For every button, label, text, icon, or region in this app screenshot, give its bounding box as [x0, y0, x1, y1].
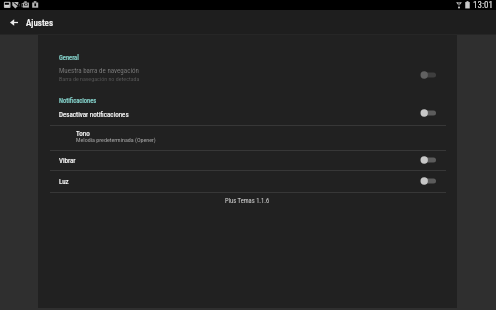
button[interactable]: Toggle [416, 152, 444, 168]
button[interactable]: Toggle [416, 67, 444, 83]
staticText: General [59, 54, 79, 62]
button[interactable]: Muestra barra de navegación [38, 63, 457, 86]
staticText: Melodía predeterminada (Opener) [76, 136, 156, 143]
button[interactable]: Tono [38, 125, 457, 149]
staticText: Plus Temas 1.1.6 [225, 197, 270, 205]
staticText: Desactivar notificaciones [59, 111, 129, 119]
button[interactable]: Toggle [416, 173, 444, 189]
staticText: Notificaciones [59, 97, 97, 105]
button[interactable]: Toggle [416, 105, 444, 121]
staticText: Luz [59, 178, 69, 186]
staticText: Barra de navegación no detectada [59, 75, 140, 82]
button[interactable]: Luz [38, 172, 457, 191]
staticText: 13:01 [473, 0, 493, 10]
staticText: Tono [76, 130, 90, 138]
staticText: Muestra barra de navegación [59, 67, 139, 75]
button[interactable]: Desactivar notificaciones [38, 104, 457, 125]
staticText: Ajustes [26, 18, 53, 29]
button[interactable]: Vibrar [38, 151, 457, 170]
button[interactable]: Back [2, 10, 26, 35]
staticText: Vibrar [59, 157, 76, 165]
